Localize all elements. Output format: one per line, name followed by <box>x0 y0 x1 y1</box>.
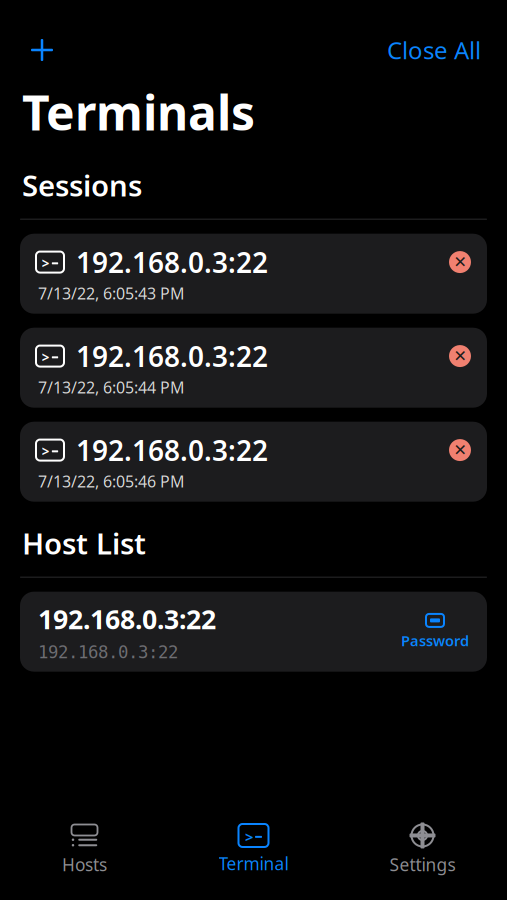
button[interactable]: New Terminal <box>20 32 64 68</box>
button[interactable]: Settings <box>338 817 507 882</box>
staticText: Settings <box>389 853 455 876</box>
staticText: > <box>42 348 50 366</box>
staticText: ✕ <box>453 253 466 271</box>
staticText: Terminal <box>218 852 288 875</box>
staticText: 7/13/22, 6:05:46 PM <box>38 471 185 492</box>
staticText: Sessions <box>22 166 142 205</box>
staticText: 192.168.0.3:22 <box>76 243 268 281</box>
staticText: 192.168.0.3:22 <box>38 642 178 662</box>
button[interactable]: > <box>20 328 487 408</box>
staticText: > <box>245 827 253 847</box>
staticText: Hosts <box>62 853 107 876</box>
staticText: 7/13/22, 6:05:44 PM <box>38 377 185 398</box>
staticText: 192.168.0.3:22 <box>76 431 268 469</box>
staticText: Terminals <box>22 80 255 144</box>
staticText: 192.168.0.3:22 <box>38 601 216 636</box>
button[interactable]: > <box>20 422 487 502</box>
staticText: 7/13/22, 6:05:43 PM <box>38 283 185 304</box>
staticText: > <box>42 254 50 272</box>
staticText: Host List <box>22 524 146 563</box>
staticText: Password <box>401 631 469 650</box>
staticText: ✕ <box>453 347 466 365</box>
button[interactable]: 192.168.0.3:22 <box>20 592 487 672</box>
staticText: Close All <box>387 34 481 66</box>
staticText: > <box>42 442 50 460</box>
staticText: ✕ <box>453 441 466 459</box>
staticText: 192.168.0.3:22 <box>76 337 268 375</box>
button[interactable]: > <box>20 234 487 314</box>
button[interactable]: > <box>169 818 338 881</box>
button[interactable]: Hosts <box>0 817 169 882</box>
button[interactable]: Close All <box>381 32 487 68</box>
